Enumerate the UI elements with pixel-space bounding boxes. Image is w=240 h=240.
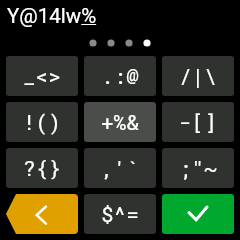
button[interactable]: !() <box>6 102 78 142</box>
button[interactable]: ?{} <box>6 148 78 188</box>
button[interactable]: ,'` <box>84 148 156 188</box>
button[interactable]: Enter <box>162 194 234 234</box>
button[interactable]: /|\ <box>162 56 234 96</box>
staticText: !() <box>23 108 61 136</box>
button[interactable]: -[] <box>162 102 234 142</box>
staticText: +%& <box>101 108 139 136</box>
staticText: ;"~ <box>179 154 217 182</box>
staticText: ,'` <box>101 154 139 182</box>
button[interactable]: _<> <box>6 56 78 96</box>
staticText: .:@ <box>101 62 139 90</box>
button[interactable]: ;"~ <box>162 148 234 188</box>
staticText: _<> <box>23 62 61 90</box>
staticText: Y@14lw% <box>7 4 97 28</box>
staticText: $^= <box>101 200 139 228</box>
staticText: /|\ <box>179 62 217 90</box>
staticText: -[] <box>179 108 217 136</box>
button[interactable]: Backspace <box>6 194 78 234</box>
button[interactable]: +%& <box>84 102 156 142</box>
button[interactable]: .:@ <box>84 56 156 96</box>
button[interactable]: $^= <box>84 194 156 234</box>
staticText: ?{} <box>23 154 61 182</box>
